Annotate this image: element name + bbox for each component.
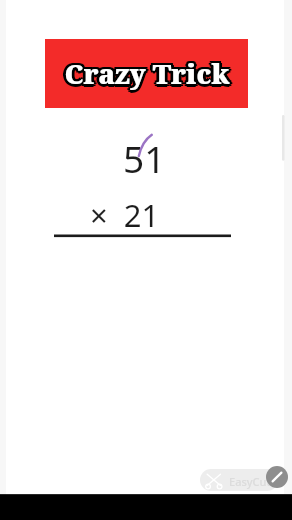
staticText: Crazy Trick	[64, 57, 230, 94]
staticText: Crazy Trick	[61, 55, 227, 92]
staticText: Crazy Trick	[62, 53, 228, 90]
staticText: Crazy Trick	[64, 53, 230, 90]
staticText: Crazy Trick	[66, 57, 232, 94]
staticText: × 21	[90, 194, 160, 236]
button[interactable]: Edit	[266, 466, 288, 488]
staticText: EasyCut	[229, 474, 271, 489]
staticText: Crazy Trick	[62, 57, 228, 94]
staticText: Crazy Trick	[66, 53, 232, 90]
staticText: Crazy Trick	[66, 55, 232, 92]
button[interactable]: Crazy Trick	[45, 39, 248, 108]
staticText: Crazy Trick	[64, 58, 230, 95]
staticText: Crazy Trick	[64, 53, 230, 90]
staticText: Crazy Trick	[64, 55, 230, 92]
staticText: Crazy Trick	[67, 55, 233, 92]
staticText: 51	[123, 133, 166, 179]
staticText: Crazy Trick	[62, 55, 228, 92]
other: EasyCut watermark	[200, 469, 278, 491]
